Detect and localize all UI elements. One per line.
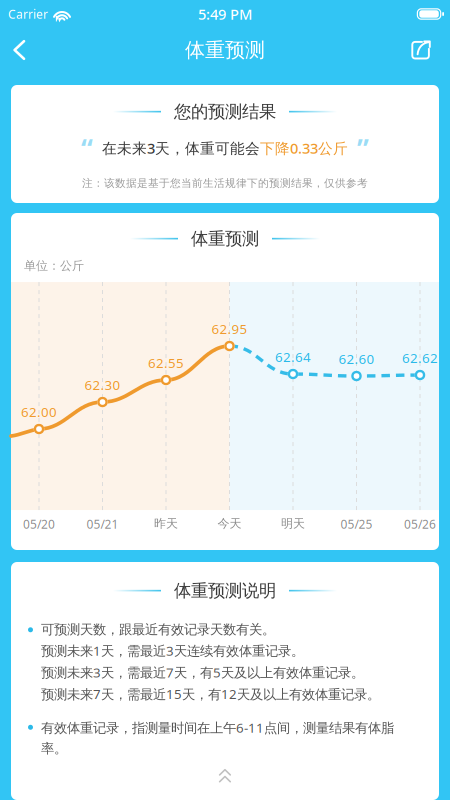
staticText: 明天 xyxy=(281,516,305,531)
button[interactable]: Share xyxy=(397,30,450,69)
staticText: 下降0.33公斤 xyxy=(260,138,348,158)
staticText: 05/25 xyxy=(340,516,372,532)
staticText: 昨天 xyxy=(154,516,178,531)
staticText: 5:49 PM xyxy=(198,4,252,24)
button[interactable]: Collapse xyxy=(209,762,241,789)
staticText: 体重预测说明 xyxy=(174,580,276,601)
staticText: 有效体重记录，指测量时间在上午6-11点间，测量结果有体脂 xyxy=(41,719,394,736)
staticText: 62.30 xyxy=(84,376,120,394)
staticText: “ xyxy=(81,130,93,166)
staticText: 预测未来1天，需最近3天连续有效体重记录。 xyxy=(41,642,304,659)
staticText: 05/26 xyxy=(404,516,436,532)
staticText: 体重预测 xyxy=(191,228,259,249)
staticText: 05/20 xyxy=(23,516,55,532)
staticText: 注：该数据是基于您当前生活规律下的预测结果，仅供参考 xyxy=(82,177,368,190)
staticText: 62.60 xyxy=(338,350,374,368)
staticText: 62.62 xyxy=(402,349,438,367)
staticText: 可预测天数，跟最近有效记录天数有关。 xyxy=(41,621,275,638)
staticText: 62.00 xyxy=(21,403,57,421)
staticText: 今天 xyxy=(217,516,241,531)
staticText: 62.95 xyxy=(211,320,247,338)
staticText: 62.55 xyxy=(148,354,184,372)
staticText: 预测未来3天，需最近7天，有5天及以上有效体重记录。 xyxy=(41,663,364,681)
staticText: 体重预测 xyxy=(185,38,265,62)
staticText: 预测未来7天，需最近15天，有12天及以上有效体重记录。 xyxy=(41,685,380,703)
staticText: ” xyxy=(357,130,369,166)
staticText: 率。 xyxy=(41,740,67,757)
staticText: 62.64 xyxy=(275,348,311,366)
staticText: 单位：公斤 xyxy=(24,258,84,273)
staticText: Carrier xyxy=(8,6,48,22)
staticText: 您的预测结果 xyxy=(174,101,276,122)
staticText: 在未来3天，体重可能会 xyxy=(102,138,260,158)
button[interactable]: Back xyxy=(0,31,41,69)
staticText: 05/21 xyxy=(86,516,118,532)
